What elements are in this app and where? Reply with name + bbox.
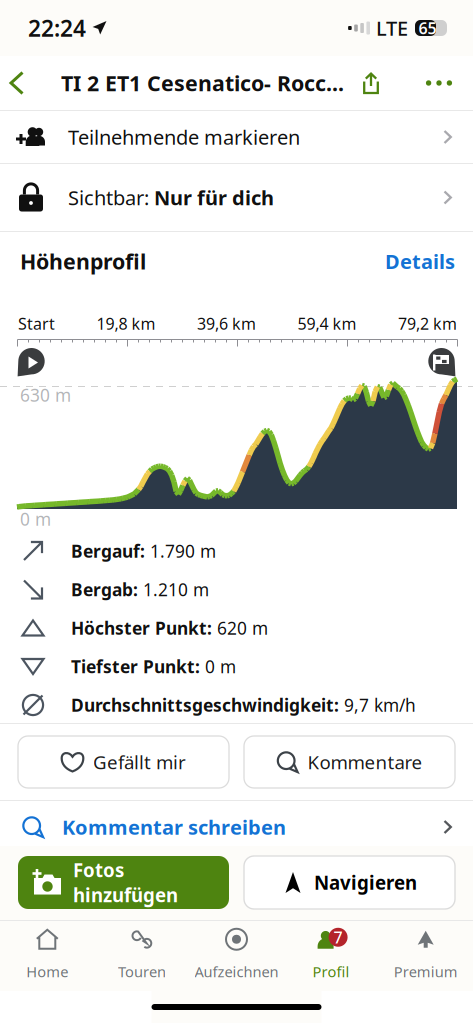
- staticText: Kommentar schreiben: [62, 814, 286, 840]
- staticText: Fotos hinzufügen: [73, 858, 178, 907]
- staticText: 1.790 m: [150, 539, 216, 562]
- staticText: Tiefster Punkt:: [71, 655, 205, 678]
- staticText: Details: [385, 248, 455, 274]
- staticText: Kommentare: [307, 750, 422, 774]
- button[interactable]: Details: [385, 248, 455, 274]
- staticText: Durchschnittsgeschwindigkeit:: [71, 693, 344, 716]
- staticText: 39,6 km: [197, 313, 256, 334]
- staticText: Aufzeichnen: [194, 962, 278, 981]
- staticText: Profil: [313, 962, 350, 981]
- button[interactable]: Kommentar schreiben: [0, 801, 473, 853]
- button[interactable]: Aufzeichnen: [189, 921, 284, 991]
- staticText: 630 m: [20, 383, 71, 406]
- staticText: Premium: [394, 962, 458, 981]
- staticText: 0 m: [205, 655, 236, 678]
- button[interactable]: Premium: [378, 921, 473, 991]
- staticText: Nur für dich: [154, 184, 274, 211]
- button[interactable]: Home: [0, 921, 95, 991]
- staticText: 7: [334, 927, 343, 948]
- button[interactable]: Sichtbar:: [0, 164, 473, 231]
- staticText: Gefällt mir: [93, 750, 186, 774]
- staticText: 620 m: [217, 616, 268, 639]
- button[interactable]: Touren: [95, 921, 189, 991]
- staticText: Start: [18, 313, 55, 334]
- staticText: 1.210 m: [143, 578, 209, 601]
- staticText: Bergab:: [71, 578, 143, 601]
- staticText: Höchster Punkt:: [71, 616, 217, 639]
- button[interactable]: Teilnehmende markieren: [0, 111, 473, 163]
- staticText: Home: [26, 962, 68, 981]
- staticText: Bergauf:: [71, 539, 150, 562]
- button[interactable]: Back: [0, 57, 61, 109]
- staticText: Sichtbar:: [68, 184, 154, 211]
- staticText: 0 m: [20, 507, 51, 530]
- button[interactable]: More: [417, 59, 473, 107]
- staticText: 9,7 km/h: [344, 693, 416, 716]
- button[interactable]: Share: [349, 59, 417, 107]
- staticText: 65: [418, 17, 436, 39]
- staticText: 79,2 km: [398, 313, 457, 334]
- staticText: 59,4 km: [297, 313, 356, 334]
- staticText: Navigieren: [314, 870, 417, 895]
- staticText: TI 2 ET1 Cesenatico- Rocc...: [61, 69, 344, 97]
- button[interactable]: 7: [284, 921, 378, 991]
- button[interactable]: Fotos hinzufügen: [18, 856, 229, 909]
- staticText: 22:24: [28, 13, 86, 43]
- staticText: Touren: [118, 962, 166, 981]
- staticText: Teilnehmende markieren: [68, 124, 300, 150]
- button[interactable]: Kommentare: [244, 736, 455, 788]
- button[interactable]: Gefällt mir: [18, 736, 229, 788]
- staticText: 19,8 km: [96, 313, 155, 334]
- staticText: Höhenprofil: [20, 247, 146, 275]
- button[interactable]: Navigieren: [244, 856, 455, 909]
- staticText: LTE: [376, 15, 408, 41]
